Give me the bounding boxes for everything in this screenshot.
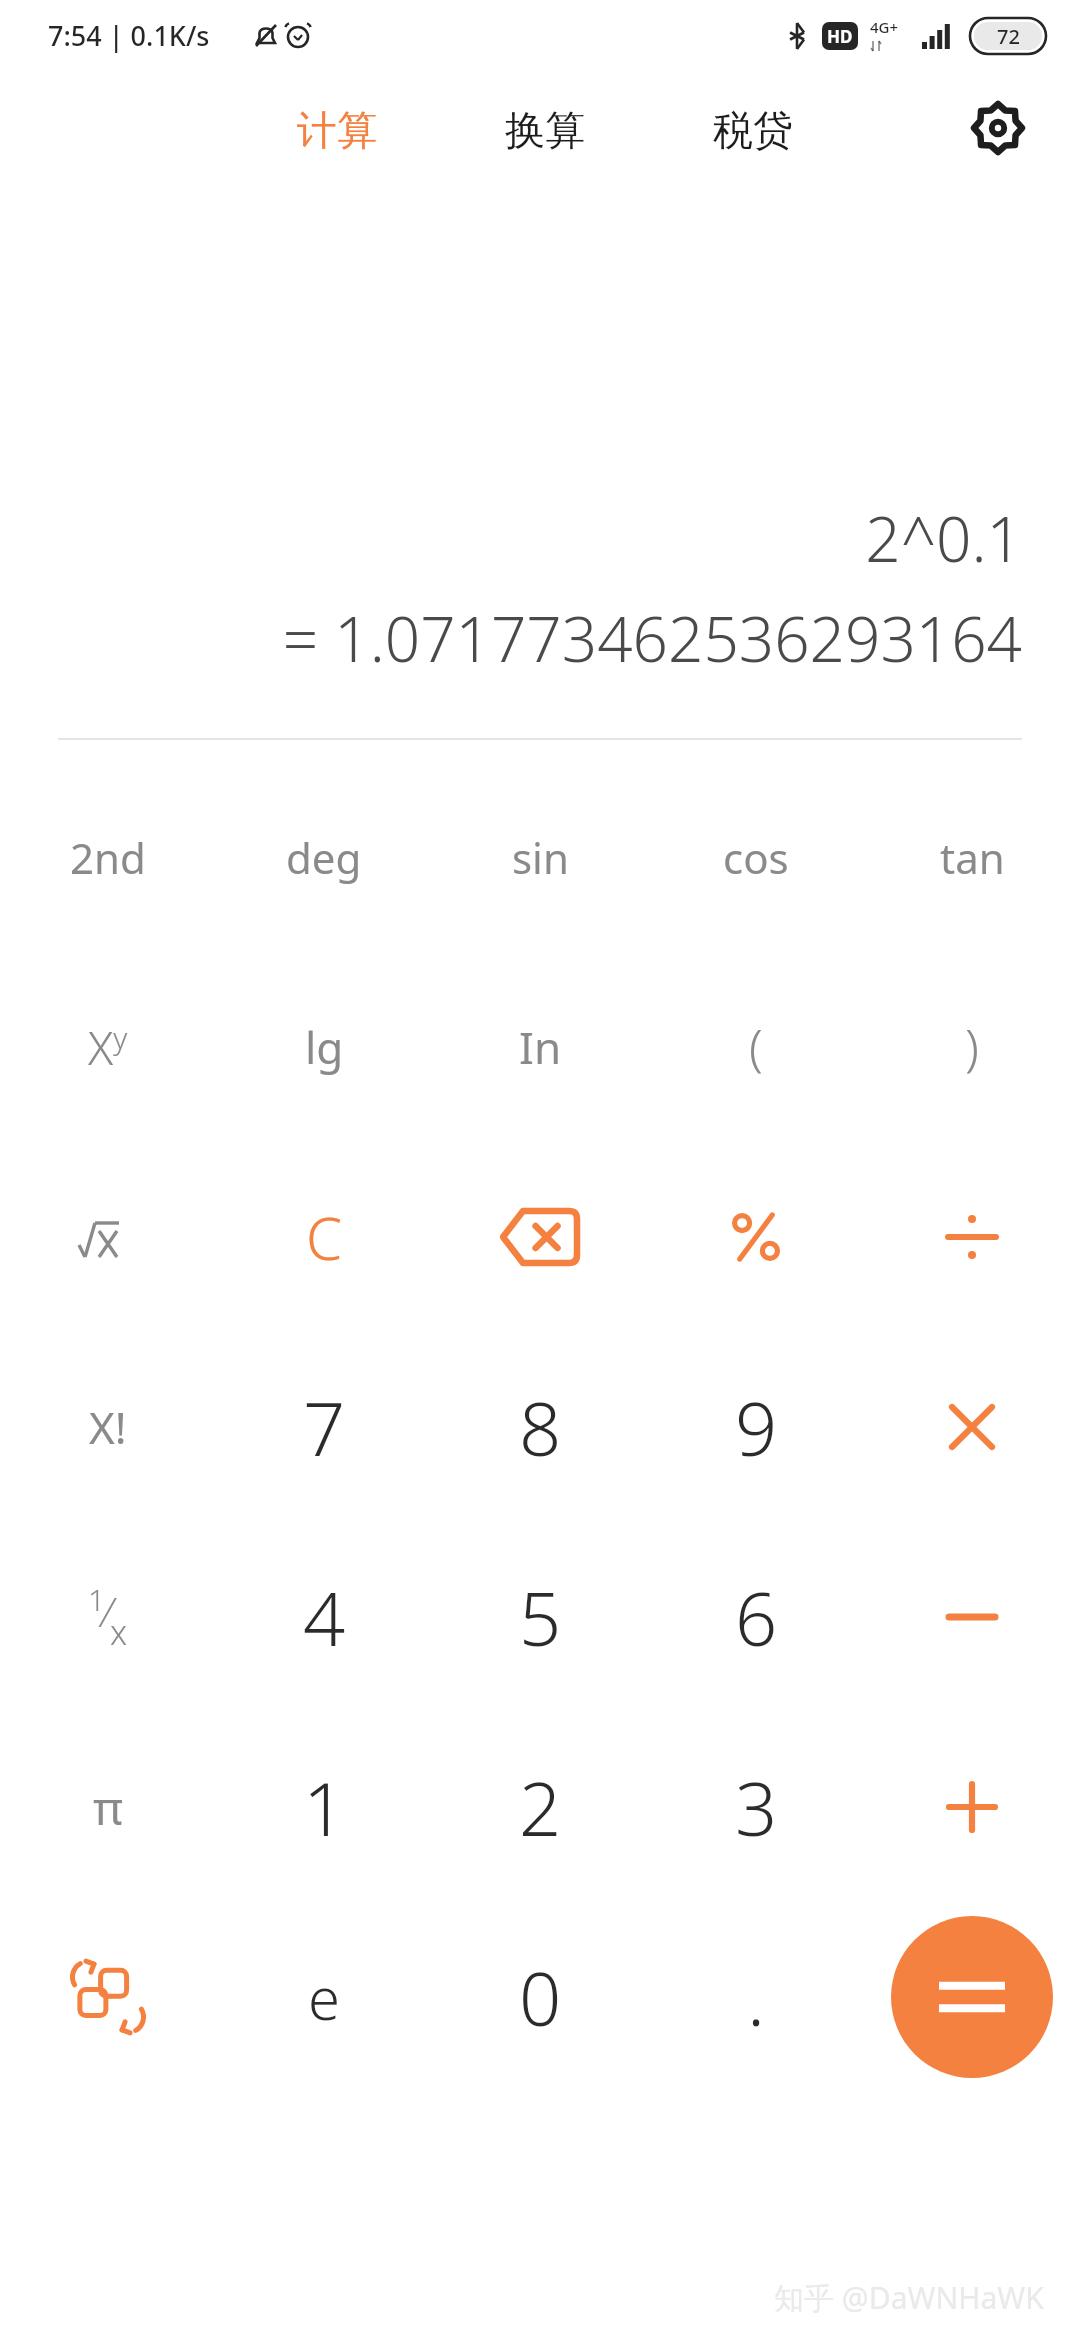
button[interactable]: 6 bbox=[648, 1522, 864, 1712]
button[interactable]: 9 bbox=[648, 1332, 864, 1522]
staticText: 8 bbox=[519, 1377, 562, 1478]
staticText: 1⁄x bbox=[88, 1579, 128, 1655]
button[interactable]: tan bbox=[864, 762, 1080, 952]
staticText: e bbox=[308, 1958, 341, 2037]
button[interactable]: 计算 bbox=[258, 82, 416, 178]
button[interactable]: 换算 bbox=[466, 82, 624, 178]
staticText: 6 bbox=[735, 1567, 778, 1668]
staticText: 0 bbox=[519, 1947, 562, 2048]
staticText: ( bbox=[749, 1013, 763, 1081]
button[interactable]: In bbox=[432, 952, 648, 1142]
staticText: lg bbox=[305, 1017, 344, 1077]
staticText: X! bbox=[89, 1397, 127, 1457]
staticText: cos bbox=[723, 829, 789, 886]
staticText: 72 bbox=[997, 23, 1020, 50]
button[interactable]: Backspace bbox=[432, 1142, 648, 1332]
button[interactable]: sin bbox=[432, 762, 648, 952]
button[interactable]: 税贷 bbox=[674, 82, 832, 178]
button[interactable]: e bbox=[216, 1902, 432, 2092]
button[interactable]: 5 bbox=[432, 1522, 648, 1712]
button[interactable]: 1⁄x bbox=[0, 1522, 216, 1712]
button[interactable]: X! bbox=[0, 1332, 216, 1522]
staticText: 5 bbox=[519, 1567, 562, 1668]
staticText: ) bbox=[965, 1013, 979, 1081]
button[interactable]: deg bbox=[216, 762, 432, 952]
staticText: 3 bbox=[735, 1757, 778, 1858]
button[interactable]: Square root bbox=[0, 1142, 216, 1332]
staticText: 7 bbox=[303, 1377, 346, 1478]
button[interactable]: 0 bbox=[432, 1902, 648, 2092]
staticText: 知乎 @DaWNHaWK bbox=[774, 2277, 1044, 2318]
staticText: π bbox=[93, 1776, 124, 1839]
staticText: C bbox=[306, 1198, 343, 1277]
staticText: 2 bbox=[519, 1757, 562, 1858]
staticText: HD bbox=[827, 25, 853, 48]
staticText: . bbox=[747, 1947, 766, 2048]
staticText: 4 bbox=[303, 1567, 346, 1668]
button[interactable]: 2 bbox=[432, 1712, 648, 1902]
button[interactable]: Plus bbox=[864, 1712, 1080, 1902]
staticText: 税贷 bbox=[713, 105, 793, 155]
button[interactable]: . bbox=[648, 1902, 864, 2092]
button[interactable]: Xy bbox=[0, 952, 216, 1142]
button[interactable]: Multiply bbox=[864, 1332, 1080, 1522]
staticText: In bbox=[519, 1017, 562, 1077]
button[interactable]: C bbox=[216, 1142, 432, 1332]
button[interactable]: Settings bbox=[950, 80, 1046, 176]
button[interactable]: Percent bbox=[648, 1142, 864, 1332]
button[interactable]: Equals bbox=[891, 1916, 1053, 2078]
button[interactable]: π bbox=[0, 1712, 216, 1902]
staticText: = 1.071773462536293164 bbox=[58, 596, 1022, 680]
staticText: 1 bbox=[303, 1757, 346, 1858]
button[interactable]: lg bbox=[216, 952, 432, 1142]
button[interactable]: 1 bbox=[216, 1712, 432, 1902]
button[interactable]: cos bbox=[648, 762, 864, 952]
staticText: Xy bbox=[88, 1016, 128, 1079]
button[interactable]: 2nd bbox=[0, 762, 216, 952]
staticText: 计算 bbox=[297, 105, 377, 155]
staticText: 2^0.1 bbox=[58, 496, 1022, 580]
staticText: 2nd bbox=[70, 829, 146, 886]
staticText: tan bbox=[940, 829, 1005, 886]
button[interactable]: Divide bbox=[864, 1142, 1080, 1332]
button[interactable]: 3 bbox=[648, 1712, 864, 1902]
button[interactable]: Minus bbox=[864, 1522, 1080, 1712]
staticText: 4G+ bbox=[870, 17, 899, 37]
button[interactable]: ) bbox=[864, 952, 1080, 1142]
button[interactable]: ( bbox=[648, 952, 864, 1142]
staticText: deg bbox=[286, 829, 362, 886]
staticText: 7:54 | 0.1K/s bbox=[48, 17, 210, 54]
button[interactable]: Convert bbox=[0, 1902, 216, 2092]
button[interactable]: 7 bbox=[216, 1332, 432, 1522]
button[interactable]: 8 bbox=[432, 1332, 648, 1522]
staticText: 换算 bbox=[505, 105, 585, 155]
staticText: 9 bbox=[735, 1377, 778, 1478]
staticText: sin bbox=[512, 829, 569, 886]
button[interactable]: 4 bbox=[216, 1522, 432, 1712]
